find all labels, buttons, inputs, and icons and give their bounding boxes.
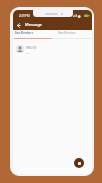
staticText: New Members (58, 31, 76, 35)
button[interactable] (15, 22, 22, 29)
staticText: Message (25, 22, 42, 27)
staticText: Hi (26, 51, 29, 54)
button[interactable]: New Members (52, 30, 91, 39)
button[interactable]: Best Members (13, 30, 52, 39)
staticText: SWUS B (26, 46, 37, 50)
button[interactable]: SWUS B (13, 44, 92, 56)
staticText: 2:39 PM (19, 14, 30, 18)
staticText: Best Members (15, 31, 33, 35)
button[interactable] (74, 158, 84, 168)
